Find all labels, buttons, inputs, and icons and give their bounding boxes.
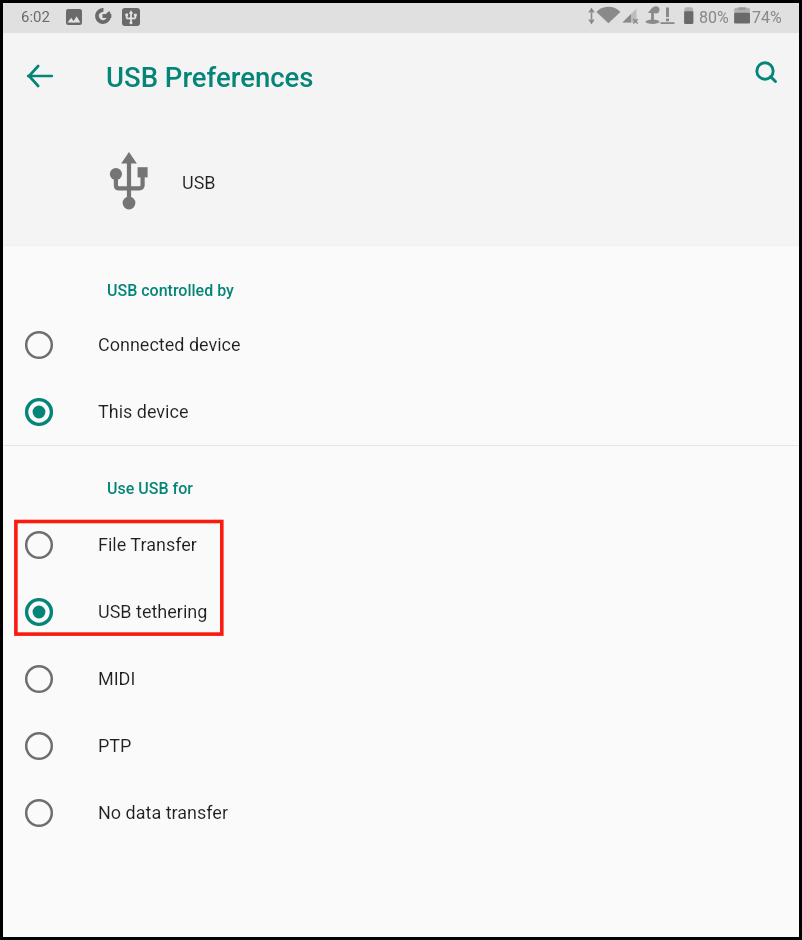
button[interactable]: Connected device bbox=[3, 311, 799, 378]
button[interactable]: This device bbox=[3, 378, 799, 445]
staticText: No data transfer bbox=[98, 802, 229, 823]
button[interactable]: No data transfer bbox=[3, 779, 799, 846]
staticText: PTP bbox=[98, 735, 132, 756]
staticText: USB Preferences bbox=[106, 61, 314, 93]
staticText: 74% bbox=[752, 8, 782, 27]
button[interactable]: File Transfer bbox=[3, 511, 799, 578]
button[interactable]: Back bbox=[12, 48, 68, 104]
staticText: USB bbox=[182, 172, 216, 193]
staticText: This device bbox=[98, 401, 189, 422]
staticText: 6:02 bbox=[21, 8, 50, 26]
staticText: USB controlled by bbox=[107, 281, 234, 300]
button[interactable]: Search bbox=[741, 48, 797, 104]
staticText: MIDI bbox=[98, 668, 136, 689]
staticText: Connected device bbox=[98, 334, 241, 355]
staticText: USB tethering bbox=[98, 601, 208, 622]
staticText: File Transfer bbox=[98, 534, 197, 555]
staticText: 80% bbox=[699, 8, 729, 27]
button[interactable]: PTP bbox=[3, 712, 799, 779]
button[interactable]: USB tethering bbox=[3, 578, 799, 645]
staticText: Use USB for bbox=[107, 479, 193, 498]
button[interactable]: MIDI bbox=[3, 645, 799, 712]
